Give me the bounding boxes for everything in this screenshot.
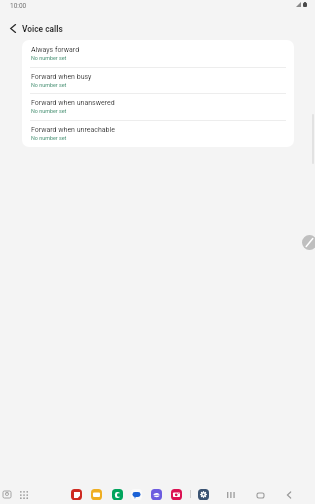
button[interactable]: Files [71,489,82,500]
button[interactable]: Messages [131,489,142,500]
button[interactable]: Recent files [1,488,13,500]
button[interactable]: Edge panel [302,235,315,250]
staticText: Forward when unreachable [31,126,115,134]
button[interactable]: Always forward [22,40,294,67]
staticText: No number set [31,82,67,88]
staticText: No number set [31,135,67,141]
button[interactable]: Camera [171,489,182,500]
staticText: No number set [31,55,67,61]
staticText: 10:00 [10,2,27,10]
button[interactable]: All apps [17,488,29,500]
staticText: No number set [31,108,67,114]
button[interactable]: Settings [198,489,209,500]
button[interactable]: Back [5,21,20,36]
staticText: Always forward [31,46,80,54]
staticText: Forward when busy [31,73,92,81]
staticText: Voice calls [22,24,63,34]
button[interactable]: Home [254,489,266,501]
button[interactable]: Forward when unreachable [22,120,294,147]
button[interactable]: Recent apps [224,489,236,501]
button[interactable]: My Files [91,489,102,500]
staticText: Forward when unanswered [31,99,115,107]
button[interactable]: Forward when busy [22,67,294,94]
button[interactable]: Back [283,489,295,501]
button[interactable]: Forward when unanswered [22,93,294,120]
button[interactable]: Internet [151,489,162,500]
button[interactable]: Contacts [112,489,123,500]
